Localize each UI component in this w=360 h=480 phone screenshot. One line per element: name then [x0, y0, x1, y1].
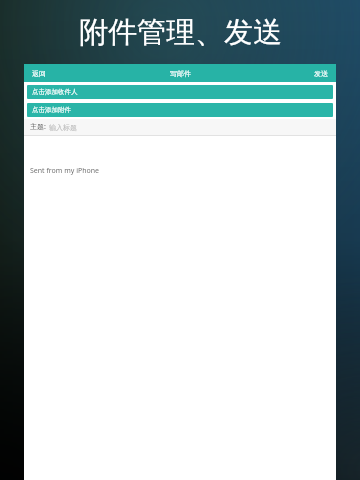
- button[interactable]: 发送: [306, 69, 336, 78]
- staticText: 主题:: [30, 122, 46, 132]
- staticText: 点击添加附件: [32, 106, 71, 114]
- button[interactable]: 主题:: [24, 119, 336, 135]
- button[interactable]: 点击添加附件: [27, 103, 333, 117]
- staticText: 写邮件: [170, 69, 191, 78]
- staticText: 发送: [314, 69, 328, 78]
- staticText: 附件管理、发送: [79, 14, 282, 51]
- button[interactable]: Sent from my iPhone: [30, 166, 336, 176]
- staticText: Sent from my iPhone: [30, 166, 100, 176]
- button[interactable]: 返回: [24, 69, 54, 78]
- button[interactable]: 点击添加收件人: [27, 85, 333, 99]
- staticText: 输入标题: [49, 123, 77, 132]
- staticText: 返回: [32, 69, 46, 78]
- staticText: 点击添加收件人: [32, 88, 78, 96]
